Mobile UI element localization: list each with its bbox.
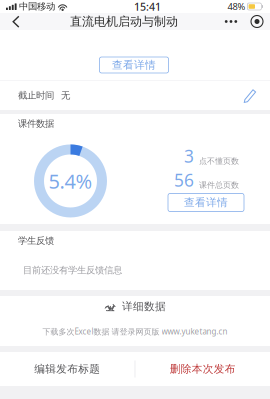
staticText: 编辑发布标题 bbox=[34, 362, 100, 375]
button[interactable]: 更多 bbox=[218, 13, 244, 30]
staticText: 课件总页数 bbox=[199, 180, 239, 190]
button[interactable]: 查看详情 bbox=[168, 193, 244, 211]
button[interactable]: 直播 bbox=[244, 13, 270, 30]
button[interactable]: 删除本次发布 bbox=[135, 352, 270, 386]
button[interactable]: 返回 bbox=[0, 13, 30, 30]
staticText: 15:41 bbox=[134, 0, 161, 14]
staticText: 3 bbox=[184, 144, 194, 167]
staticText: 查看详情 bbox=[112, 58, 156, 71]
staticText: 详细数据 bbox=[122, 300, 166, 313]
staticText: 5.4% bbox=[48, 168, 92, 194]
button[interactable]: 编辑发布标题 bbox=[0, 352, 135, 386]
staticText: 直流电机启动与制动 bbox=[70, 14, 178, 29]
staticText: 查看详情 bbox=[184, 196, 228, 209]
staticText: 课件数据 bbox=[18, 118, 54, 129]
button[interactable]: 编辑截止时间 bbox=[244, 88, 256, 103]
staticText: 截止时间 bbox=[18, 90, 54, 101]
staticText: 48% bbox=[227, 0, 245, 13]
button[interactable]: 查看详情 bbox=[99, 57, 168, 73]
button[interactable]: 详细数据 bbox=[0, 296, 270, 316]
staticText: 下载多次Excel数据 请登录网页版 www.yuketang.cn bbox=[42, 326, 227, 337]
staticText: 中国移动 bbox=[19, 1, 55, 12]
staticText: 删除本次发布 bbox=[170, 362, 236, 375]
staticText: 无 bbox=[61, 90, 70, 101]
staticText: 目前还没有学生反馈信息 bbox=[23, 264, 122, 276]
staticText: 学生反馈 bbox=[18, 235, 54, 246]
staticText: 56 bbox=[174, 168, 194, 191]
staticText: 点不懂页数 bbox=[199, 156, 239, 166]
